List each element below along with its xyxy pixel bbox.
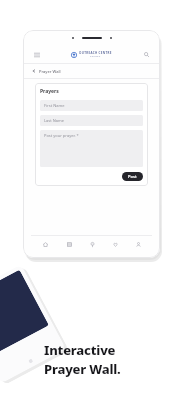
staticText: Last Name bbox=[44, 118, 65, 123]
staticText: Prayer Wall. bbox=[44, 360, 121, 378]
button[interactable]: Home bbox=[33, 236, 57, 252]
button[interactable]: Post your prayer. * bbox=[40, 130, 143, 167]
button[interactable]: Prayer Wall bbox=[32, 64, 160, 78]
button[interactable]: Last Name bbox=[40, 115, 143, 126]
staticText: Prayers bbox=[40, 88, 59, 95]
button[interactable]: Profile bbox=[127, 236, 150, 252]
button[interactable]: Locations bbox=[81, 236, 104, 252]
staticText: First Name bbox=[44, 103, 65, 108]
button[interactable]: First Name bbox=[40, 100, 143, 111]
staticText: OUTREACH CENTRE bbox=[79, 51, 112, 55]
button[interactable]: Prayer bbox=[104, 236, 127, 252]
button[interactable]: Events bbox=[57, 236, 81, 252]
button[interactable]: Menu bbox=[32, 50, 41, 59]
staticText: Post bbox=[128, 174, 137, 179]
staticText: Prayer Wall bbox=[39, 69, 61, 74]
staticText: Post your prayer. * bbox=[44, 133, 79, 138]
staticText: CHURCH bbox=[90, 55, 101, 58]
button[interactable]: Post bbox=[122, 172, 143, 181]
button[interactable]: Search bbox=[142, 50, 151, 59]
staticText: Interactive bbox=[44, 341, 116, 359]
